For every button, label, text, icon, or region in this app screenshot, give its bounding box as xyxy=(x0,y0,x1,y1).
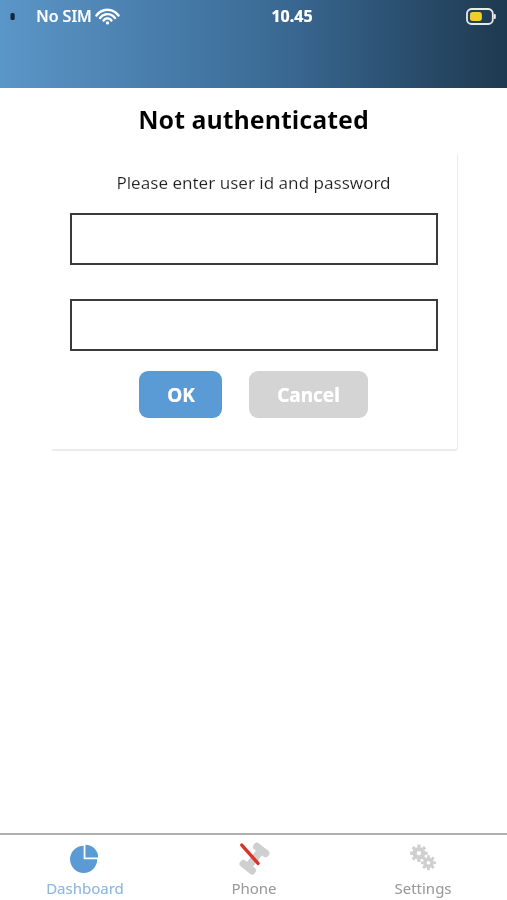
button[interactable] xyxy=(70,213,438,265)
button[interactable] xyxy=(70,299,438,351)
staticText: Phone xyxy=(231,878,277,898)
staticText: No SIM xyxy=(36,5,92,27)
staticText: Please enter user id and password xyxy=(116,171,391,194)
staticText: OK xyxy=(167,382,195,408)
button[interactable]: Dashboard xyxy=(0,835,169,900)
staticText: Dashboard xyxy=(46,878,124,898)
button[interactable]: Settings xyxy=(338,835,507,900)
staticText: 10.45 xyxy=(271,5,313,27)
button[interactable]: OK xyxy=(139,371,222,418)
button[interactable]: Cancel xyxy=(249,371,368,418)
button[interactable]: Phone xyxy=(169,835,338,900)
staticText: Settings xyxy=(394,878,452,898)
staticText: Not authenticated xyxy=(138,102,369,136)
staticText: Cancel xyxy=(277,382,340,408)
